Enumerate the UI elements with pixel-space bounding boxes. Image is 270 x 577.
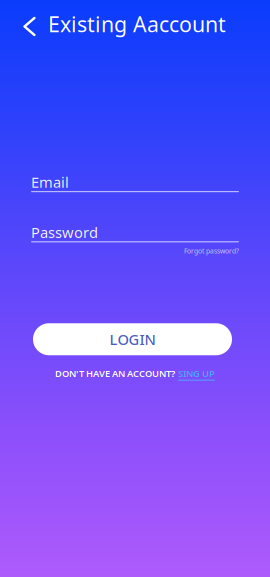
button[interactable]: Back (0, 4, 48, 43)
button[interactable]: Forgot password? (184, 246, 239, 255)
staticText: DON'T HAVE AN ACCOUNT? (55, 367, 175, 380)
staticText: SING UP (178, 367, 215, 380)
staticText: Password (31, 222, 98, 242)
staticText: LOGIN (109, 329, 155, 349)
button[interactable]: Password (31, 225, 239, 242)
staticText: Email (31, 172, 69, 192)
staticText: Existing Aaccount (48, 10, 226, 38)
button[interactable]: SING UP (178, 367, 215, 380)
button[interactable]: Email (31, 175, 239, 192)
button[interactable]: LOGIN (33, 323, 232, 355)
staticText: Forgot password? (184, 246, 239, 255)
